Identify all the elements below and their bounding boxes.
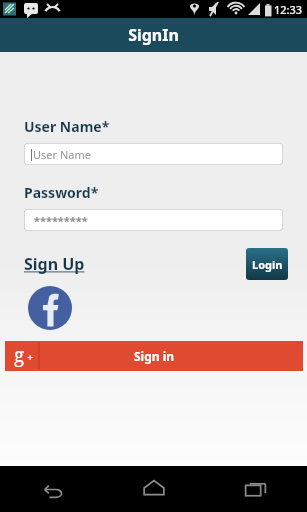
- button[interactable]: Sign Up: [24, 251, 85, 277]
- staticText: User Name*: [24, 117, 110, 136]
- staticText: *********: [34, 213, 88, 228]
- button[interactable]: Sign in with Facebook: [28, 286, 72, 330]
- staticText: g: [14, 342, 25, 368]
- staticText: +: [27, 350, 34, 365]
- staticText: User Name: [33, 147, 91, 162]
- button[interactable]: User Name: [24, 143, 283, 165]
- button[interactable]: Login: [246, 248, 288, 280]
- button[interactable]: Sign in: [5, 341, 303, 371]
- staticText: 12:33: [274, 2, 303, 17]
- button[interactable]: *********: [24, 209, 283, 231]
- staticText: Login: [252, 257, 283, 272]
- button[interactable]: Back: [0, 466, 103, 512]
- button[interactable]: Home: [103, 466, 205, 512]
- staticText: Sign in: [134, 348, 175, 364]
- staticText: SignIn: [128, 24, 179, 46]
- staticText: Password*: [24, 183, 99, 202]
- button[interactable]: Recent apps: [205, 466, 307, 512]
